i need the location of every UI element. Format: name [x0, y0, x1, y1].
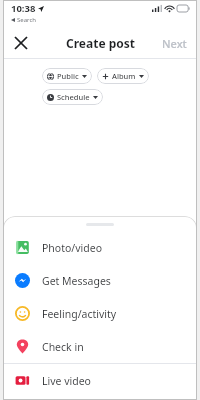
staticText: Public	[57, 71, 79, 81]
button[interactable]: Public	[42, 68, 92, 84]
staticText: Photo/video	[42, 241, 103, 255]
staticText: 10:38	[11, 2, 36, 15]
staticText: Live video	[42, 374, 91, 388]
staticText: Search	[17, 16, 36, 24]
staticText: Schedule	[57, 92, 90, 102]
button[interactable]: Check in	[3, 330, 197, 363]
button[interactable]: Live video	[3, 364, 197, 397]
button[interactable]: Close	[9, 31, 33, 55]
button[interactable]: Schedule	[42, 89, 103, 105]
button[interactable]: Feeling/activity	[3, 297, 197, 330]
button[interactable]: Next	[152, 30, 197, 57]
staticText: Feeling/activity	[42, 307, 117, 321]
button[interactable]: Album	[97, 68, 149, 84]
staticText: Album	[112, 71, 136, 81]
staticText: Create post	[66, 35, 135, 51]
button[interactable]: Get Messages	[3, 264, 197, 297]
button[interactable]: Photo/video	[3, 231, 197, 264]
staticText: Next	[162, 36, 187, 51]
staticText: Check in	[42, 340, 84, 354]
staticText: Get Messages	[42, 274, 111, 288]
